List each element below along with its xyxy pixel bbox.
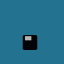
button[interactable]: Open tile bbox=[0, 0, 64, 64]
